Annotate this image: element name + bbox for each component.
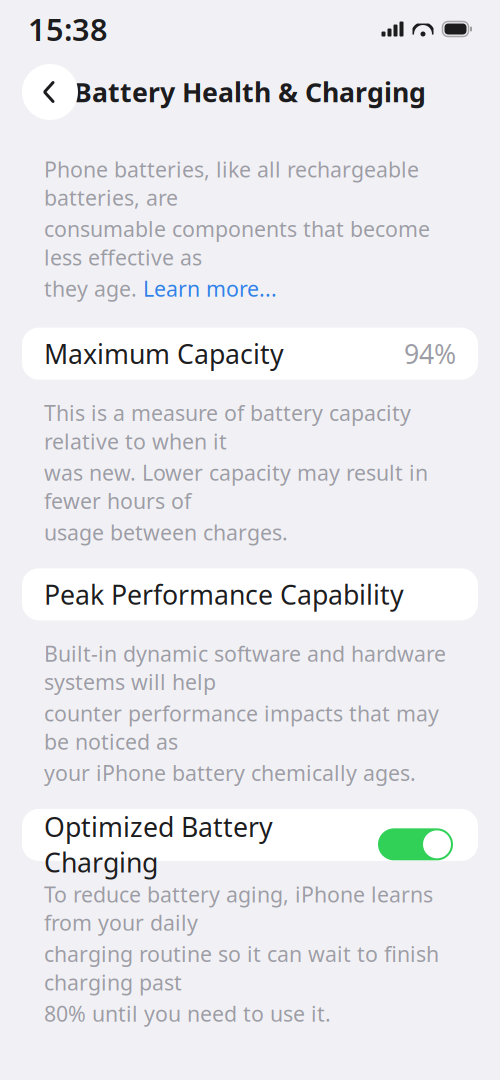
staticText: 94%: [404, 336, 456, 371]
staticText: 80% until you need to use it.: [44, 999, 331, 1028]
button[interactable]: Optimized Battery Charging: [0, 809, 500, 861]
staticText: Peak Performance Capability: [44, 577, 404, 612]
staticText: To reduce battery aging, iPhone learns f…: [44, 880, 433, 937]
staticText: charging routine so it can wait to finis…: [44, 940, 439, 996]
staticText: consumable components that become less e…: [44, 215, 430, 271]
staticText: Battery Health & Charging: [74, 74, 426, 110]
staticText: Optimized Battery Charging: [44, 809, 273, 880]
button[interactable]: Peak Performance Capability: [0, 568, 500, 620]
button[interactable]: Learn more...: [143, 274, 277, 303]
staticText: your iPhone battery chemically ages.: [44, 759, 416, 787]
staticText: Phone batteries, like all rechargeable b…: [44, 155, 419, 212]
staticText: 15:38: [28, 9, 108, 49]
staticText: Built-in dynamic software and hardware s…: [44, 639, 446, 696]
staticText: Learn more...: [143, 274, 277, 303]
staticText: they age.: [44, 274, 143, 303]
staticText: Maximum Capacity: [44, 336, 284, 371]
staticText: counter performance impacts that may be …: [44, 699, 439, 756]
staticText: was new. Lower capacity may result in fe…: [44, 458, 428, 515]
button[interactable]: Maximum Capacity: [0, 328, 500, 380]
staticText: This is a measure of battery capacity re…: [44, 399, 411, 455]
button[interactable]: Back: [22, 64, 78, 120]
staticText: usage between charges.: [44, 518, 288, 546]
